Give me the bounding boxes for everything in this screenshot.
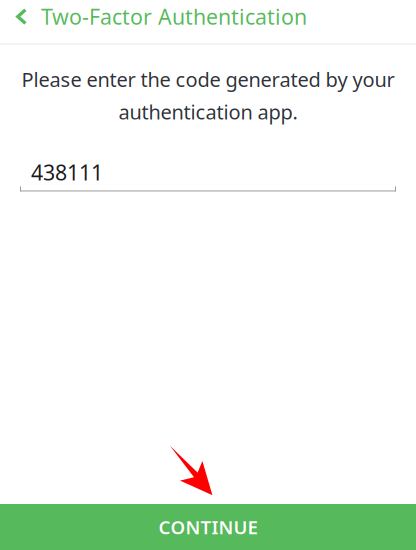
staticText: authentication app.: [118, 99, 297, 125]
button[interactable]: Authentication code: [20, 154, 396, 191]
staticText: CONTINUE: [158, 515, 257, 539]
staticText: Two-Factor Authentication: [41, 2, 307, 31]
button[interactable]: CONTINUE: [0, 504, 416, 550]
staticText: 438111: [31, 158, 103, 186]
button[interactable]: Two-Factor Authentication: [0, 0, 331, 33]
staticText: Please enter the code generated by your: [21, 66, 394, 93]
